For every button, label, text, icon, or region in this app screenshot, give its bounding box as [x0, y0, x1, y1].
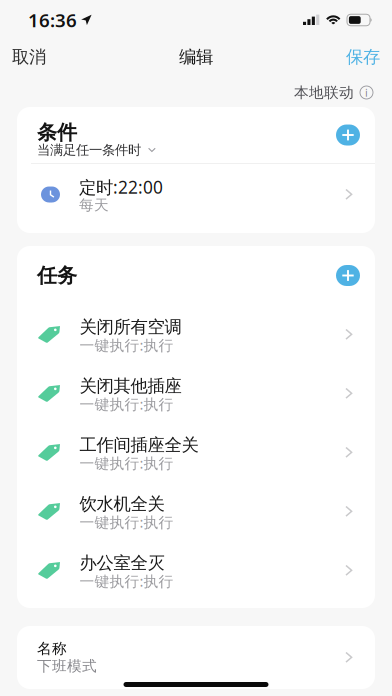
staticText: 本地联动: [294, 83, 354, 101]
staticText: 名称: [37, 639, 67, 657]
staticText: 关闭其他插座: [79, 375, 181, 397]
staticText: 定时:22:00: [79, 175, 163, 198]
button[interactable]: 工作间插座全关: [17, 423, 375, 482]
button[interactable]: 饮水机全关: [17, 482, 375, 541]
button[interactable]: 取消: [0, 40, 58, 74]
staticText: 任务: [37, 263, 77, 288]
staticText: 每天: [79, 196, 109, 214]
staticText: 一键执行:执行: [79, 571, 173, 591]
staticText: 一键执行:执行: [79, 512, 173, 532]
staticText: 16:36: [28, 8, 77, 32]
staticText: 工作间插座全关: [79, 434, 198, 456]
button[interactable]: 添加条件: [336, 124, 360, 145]
staticText: 一键执行:执行: [79, 453, 173, 473]
button[interactable]: 定时:22:00: [17, 164, 375, 233]
staticText: i: [365, 85, 368, 100]
button[interactable]: 本地联动: [294, 74, 392, 104]
staticText: 下班模式: [37, 657, 97, 675]
staticText: 当满足任一条件时: [37, 142, 141, 158]
staticText: 一键执行:执行: [79, 394, 173, 414]
staticText: 条件: [37, 120, 77, 145]
button[interactable]: 关闭其他插座: [17, 364, 375, 423]
staticText: 编辑: [179, 46, 213, 68]
staticText: 饮水机全关: [79, 493, 164, 515]
staticText: 一键执行:执行: [79, 335, 173, 355]
button[interactable]: 名称: [17, 626, 375, 689]
button[interactable]: 保存: [334, 40, 392, 74]
staticText: 保存: [346, 46, 380, 68]
staticText: 关闭所有空调: [79, 316, 181, 338]
button[interactable]: 关闭所有空调: [17, 305, 375, 364]
staticText: 取消: [12, 46, 46, 68]
button[interactable]: 添加任务: [336, 265, 360, 286]
staticText: 办公室全灭: [79, 552, 164, 574]
button[interactable]: 办公室全灭: [17, 541, 375, 600]
